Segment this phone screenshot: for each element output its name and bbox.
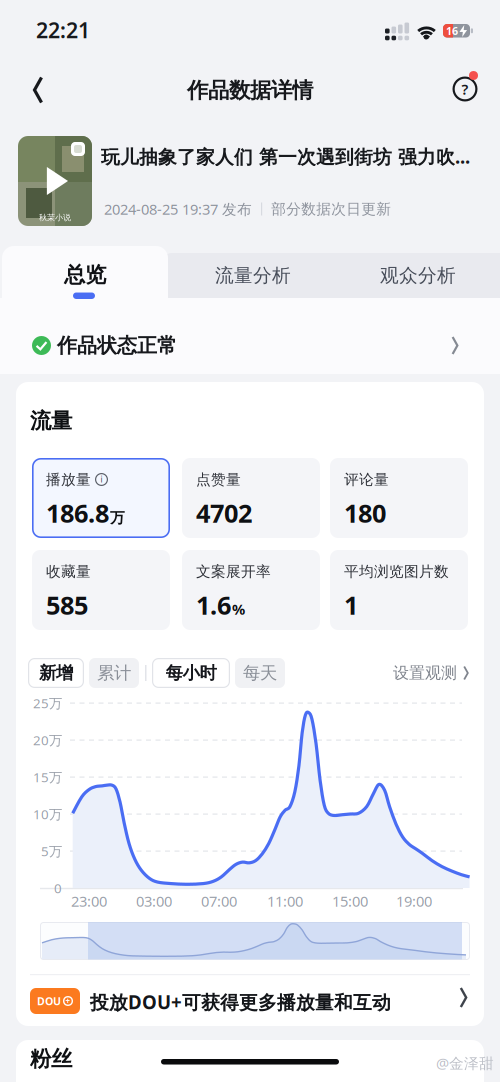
button[interactable]: 设置观测 — [366, 658, 470, 688]
staticText: 投放DOU+可获得更多播放量和互动 — [90, 990, 391, 1014]
staticText: 部分数据次日更新 — [271, 200, 391, 218]
staticText: 点赞量 — [196, 470, 241, 488]
staticText: 每小时 — [165, 662, 216, 684]
staticText: 19:00 — [396, 891, 432, 911]
staticText: 设置观测 — [393, 663, 457, 683]
staticText: 2024-08-25 19:37 发布 — [104, 199, 252, 219]
staticText: i — [100, 474, 102, 485]
staticText: DOU — [37, 994, 61, 1008]
button[interactable]: 视频封面 — [18, 136, 92, 226]
staticText: 11:00 — [267, 891, 303, 911]
staticText: 收藏量 — [46, 562, 91, 580]
staticText: 15:00 — [332, 891, 368, 911]
staticText: 22:21 — [36, 16, 90, 44]
button[interactable]: 每小时 — [152, 658, 230, 688]
button[interactable]: 总览 — [2, 252, 168, 298]
staticText: % — [232, 599, 245, 619]
staticText: 5万 — [41, 842, 62, 860]
staticText: 累计 — [97, 662, 131, 684]
staticText: 流量 — [30, 408, 72, 434]
staticText: 180 — [344, 496, 386, 530]
button[interactable]: 新增 — [28, 658, 84, 688]
staticText: 播放量 — [46, 470, 91, 488]
staticText: 23:00 — [71, 891, 107, 911]
staticText: 秋茉小说 — [39, 213, 71, 222]
button[interactable]: 观众分析 — [353, 253, 483, 298]
button[interactable]: 平均浏览图片数 — [330, 550, 468, 630]
staticText: 玩儿抽象了家人们 第一次遇到街坊 强力吹... — [101, 144, 470, 169]
staticText: 粉丝 — [30, 1046, 72, 1072]
staticText: 03:00 — [136, 891, 172, 911]
button[interactable]: 文案展开率 — [182, 550, 320, 630]
button[interactable]: 流量分析 — [188, 253, 318, 298]
staticText: 10万 — [33, 805, 62, 823]
staticText: 作品状态正常 — [57, 333, 177, 358]
staticText: 1 — [344, 588, 358, 622]
staticText: 186.8 — [46, 496, 109, 530]
staticText: 0 — [54, 879, 62, 897]
button[interactable]: 作品状态正常 — [0, 320, 500, 370]
staticText: 流量分析 — [215, 264, 291, 287]
button[interactable]: 累计 — [89, 658, 139, 688]
staticText: 作品数据详情 — [187, 77, 313, 104]
staticText: 25万 — [33, 694, 62, 712]
staticText: 总览 — [64, 262, 106, 288]
staticText: @金泽甜 — [436, 1053, 494, 1073]
button[interactable]: 每天 — [235, 658, 285, 688]
staticText: + — [65, 996, 70, 1006]
staticText: 观众分析 — [380, 264, 456, 287]
button[interactable]: 帮助 — [448, 72, 482, 106]
button[interactable]: 收藏量 — [32, 550, 170, 630]
staticText: 平均浏览图片数 — [344, 562, 449, 580]
staticText: 文案展开率 — [196, 562, 271, 580]
staticText: ? — [461, 79, 468, 99]
staticText: 15万 — [33, 768, 62, 786]
staticText: 16 — [446, 24, 458, 38]
staticText: 新增 — [39, 662, 73, 684]
button[interactable]: 点赞量 — [182, 458, 320, 538]
staticText: 4702 — [196, 496, 252, 530]
staticText: 每天 — [243, 662, 277, 684]
button[interactable]: 播放量 — [32, 458, 170, 538]
button[interactable]: 返回 — [22, 74, 54, 106]
staticText: 585 — [46, 588, 88, 622]
staticText: 万 — [110, 509, 125, 527]
staticText: 07:00 — [201, 891, 237, 911]
staticText: 评论量 — [344, 470, 389, 488]
staticText: 1.6 — [196, 588, 231, 622]
button[interactable]: DOU — [16, 976, 484, 1026]
button[interactable]: 评论量 — [330, 458, 468, 538]
staticText: 20万 — [33, 731, 62, 749]
